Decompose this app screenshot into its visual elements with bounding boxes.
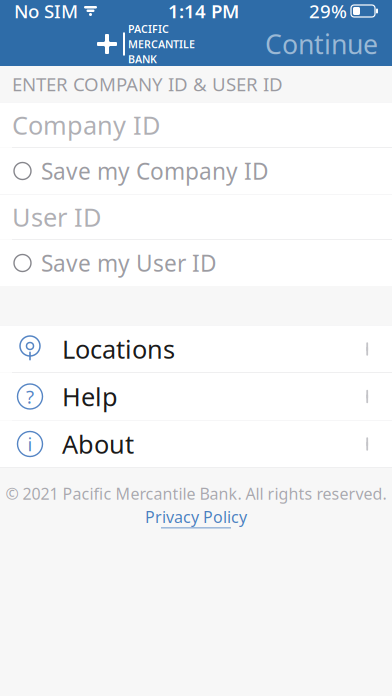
button[interactable]: User ID: [0, 194, 392, 239]
button[interactable]: Locations: [0, 325, 392, 372]
staticText: No SIM: [14, 0, 78, 23]
button[interactable]: Privacy Policy: [145, 506, 247, 528]
staticText: ENTER COMPANY ID & USER ID: [12, 72, 283, 96]
staticText: PACIFIC: [128, 22, 169, 36]
staticText: BANK: [128, 52, 157, 66]
button[interactable]: Save my User ID: [0, 240, 392, 286]
staticText: Save my User ID: [41, 248, 217, 278]
staticText: Privacy Policy: [145, 506, 247, 527]
staticText: User ID: [12, 200, 101, 234]
staticText: Help: [62, 380, 118, 413]
button[interactable]: ?: [0, 373, 392, 420]
staticText: © 2021 Pacific Mercantile Bank. All righ…: [5, 483, 386, 504]
button[interactable]: Save my Company ID: [0, 148, 392, 194]
staticText: About: [62, 427, 134, 461]
staticText: 1:14 PM: [168, 0, 239, 23]
button[interactable]: Company ID: [0, 102, 392, 147]
staticText: 29%: [309, 0, 347, 23]
staticText: Company ID: [12, 108, 160, 142]
button[interactable]: i: [0, 420, 392, 467]
staticText: Continue: [265, 26, 378, 62]
staticText: ?: [26, 384, 34, 409]
staticText: MERCANTILE: [128, 37, 195, 51]
button[interactable]: Continue: [251, 22, 392, 66]
staticText: Locations: [62, 332, 175, 366]
staticText: Save my Company ID: [41, 156, 269, 186]
staticText: i: [27, 432, 32, 456]
